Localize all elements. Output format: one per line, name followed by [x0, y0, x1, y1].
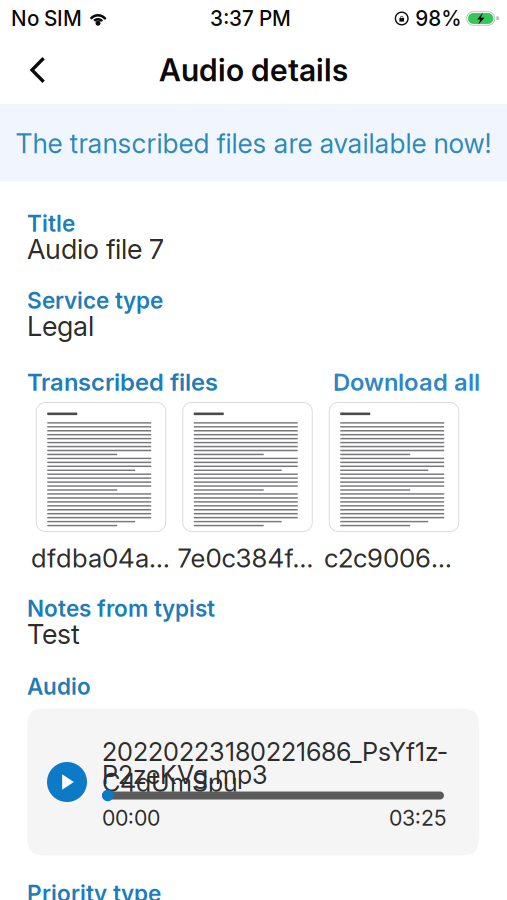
staticText: Audio details	[159, 51, 348, 88]
button[interactable]: dfdba04a-...	[31, 402, 171, 569]
button[interactable]: Download all	[333, 367, 480, 396]
staticText: Service type	[27, 287, 163, 314]
staticText: The transcribed files are available now!	[15, 127, 491, 160]
staticText: Audio file 7	[27, 232, 164, 266]
button[interactable]: Back	[15, 46, 61, 94]
staticText: 98%	[415, 6, 461, 31]
button[interactable]: 7e0c384f-77f5-...	[177, 402, 317, 569]
staticText: 3:37 PM	[210, 6, 291, 31]
staticText: Notes from typist	[27, 595, 215, 622]
staticText: No SIM	[11, 6, 82, 31]
staticText: 7e0c384f-77f5-...	[177, 542, 317, 574]
staticText: 20220223180221686_PsYf1zC4gUmSpu	[102, 736, 447, 798]
staticText: Priority type	[27, 880, 161, 900]
staticText: Audio	[27, 673, 91, 700]
staticText: 00:00	[102, 805, 160, 831]
staticText: Download all	[333, 367, 480, 396]
staticText: c2c90064-3135...	[324, 542, 464, 574]
button[interactable]: Play	[47, 762, 87, 802]
staticText: P2zeKVg.mp3	[102, 759, 268, 790]
staticText: dfdba04a-...	[31, 542, 171, 574]
staticText: Legal	[27, 309, 94, 343]
button[interactable]: c2c90064-3135...	[324, 402, 464, 569]
staticText: Transcribed files	[27, 367, 218, 396]
staticText: 03:25	[389, 805, 447, 831]
staticText: Test	[27, 617, 80, 651]
staticText: Title	[27, 210, 75, 237]
